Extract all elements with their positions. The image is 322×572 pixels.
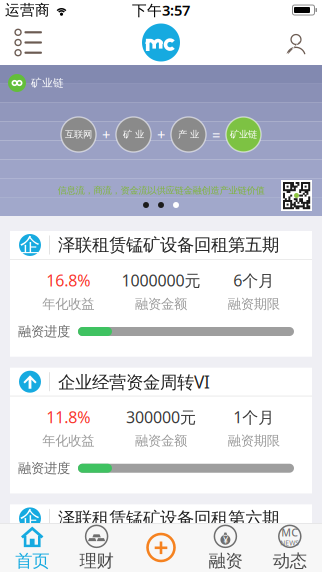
staticText: 3个月 — [233, 543, 274, 564]
staticText: 矿 业 — [123, 129, 144, 140]
staticText: 融资金额 — [135, 296, 187, 312]
staticText: 年化收益 — [42, 433, 94, 449]
staticText: 6个月 — [233, 270, 274, 291]
staticText: + — [157, 125, 165, 144]
staticText: ¥ — [223, 534, 228, 546]
staticText: 融资期限 — [228, 433, 280, 449]
button[interactable]: ¥ — [193, 523, 258, 572]
button[interactable]: MC — [258, 523, 322, 572]
staticText: 运营商 — [5, 1, 50, 19]
staticText: 融资进度 — [18, 460, 70, 476]
button[interactable]: 首页 — [0, 523, 64, 572]
staticText: 15.8% — [46, 543, 90, 564]
button[interactable]: 企 — [10, 504, 312, 572]
staticText: + — [102, 125, 110, 144]
staticText: 1000000元 — [121, 270, 200, 291]
staticText: 融资进度 — [18, 323, 70, 340]
staticText: 首页 — [15, 550, 49, 572]
button[interactable]: 企业经营资金周转VI — [10, 368, 312, 493]
staticText: 500000元 — [126, 543, 196, 564]
staticText: 融资期限 — [228, 296, 280, 312]
staticText: 矿业链 — [230, 129, 257, 140]
staticText: 下午3:57 — [132, 0, 190, 20]
staticText: 11.8% — [46, 406, 90, 428]
staticText: 产 业 — [178, 129, 199, 140]
button[interactable]: 理财 — [64, 523, 129, 572]
staticText: 信息流，商流，资金流以供应链金融创造产业链价值 — [57, 184, 264, 196]
button[interactable]: 企 — [10, 231, 312, 357]
staticText: 年化收益 — [42, 296, 94, 312]
staticText: 300000元 — [126, 406, 196, 428]
staticText: MC — [281, 525, 298, 539]
staticText: 泽联租赁锰矿设备回租第五期 — [58, 234, 279, 256]
staticText: = — [212, 125, 220, 144]
staticText: 企 — [20, 506, 40, 531]
staticText: 融资金额 — [135, 433, 187, 449]
staticText: NEWS — [280, 538, 299, 547]
staticText: 动态 — [273, 550, 307, 572]
staticText: 泽联租赁锰矿设备回租第六期 — [58, 508, 279, 529]
button[interactable]: 我的 — [277, 20, 315, 64]
staticText: 融资 — [208, 550, 242, 572]
staticText: 矿业链 — [31, 76, 64, 89]
staticText: 企 — [20, 233, 40, 257]
staticText: 1个月 — [233, 406, 274, 428]
staticText: 企业经营资金周转VI — [58, 370, 210, 393]
staticText: 互联网 — [65, 129, 92, 140]
staticText: 理财 — [80, 550, 114, 572]
staticText: 16.8% — [46, 270, 90, 291]
button[interactable]: 菜单 — [7, 20, 50, 64]
button[interactable]: 发布 — [137, 523, 185, 572]
